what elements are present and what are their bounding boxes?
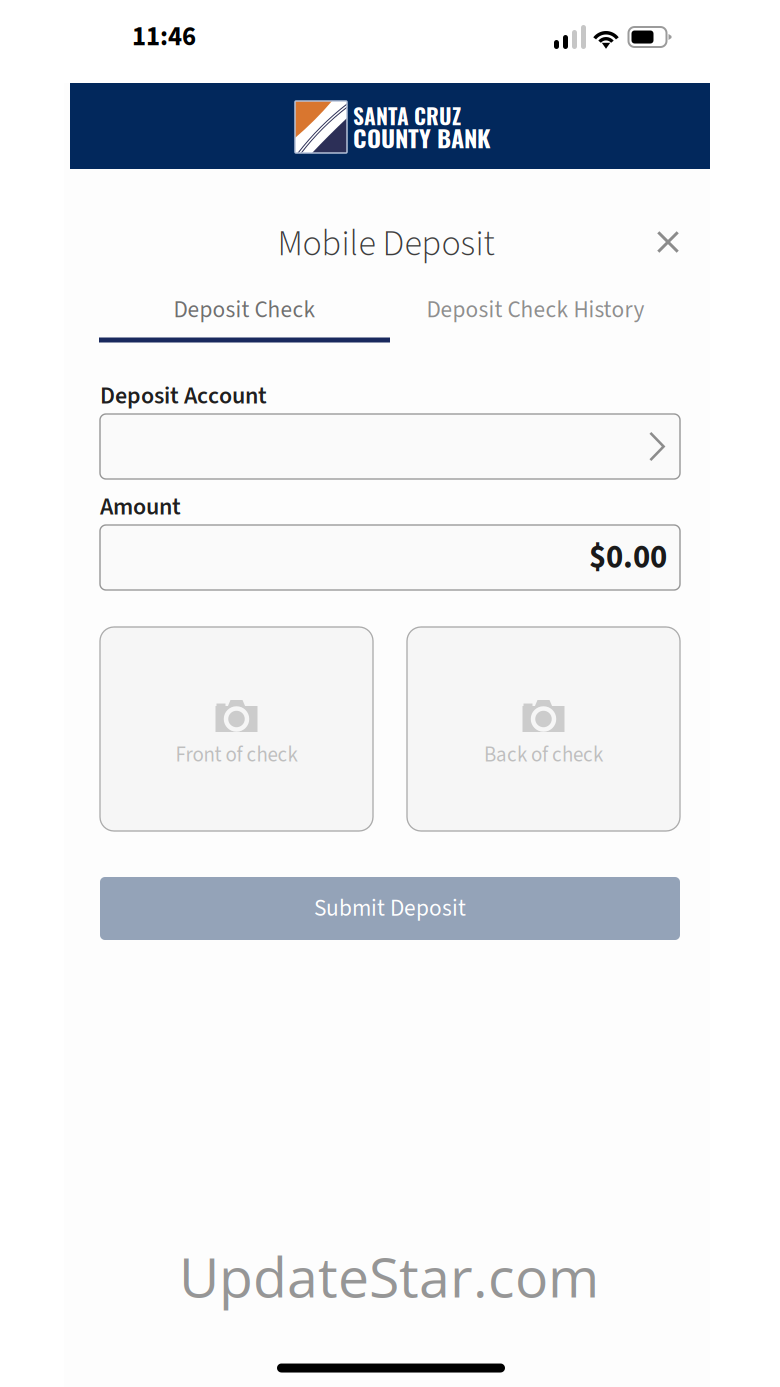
staticText: Amount xyxy=(100,490,181,524)
button[interactable]: $0.00 xyxy=(100,525,680,590)
staticText: 11:46 xyxy=(132,18,196,56)
staticText: Deposit Check xyxy=(173,293,315,327)
button[interactable]: Deposit Check History xyxy=(390,282,681,337)
staticText: Deposit Check History xyxy=(426,293,644,327)
button[interactable]: Front of check xyxy=(100,627,373,831)
staticText: COUNTY BANK xyxy=(353,120,491,155)
staticText: Submit Deposit xyxy=(314,892,466,925)
button[interactable]: Back of check xyxy=(407,627,680,831)
staticText: UpdateStar.com xyxy=(179,1238,599,1314)
button[interactable] xyxy=(100,414,680,479)
button[interactable]: Deposit Check xyxy=(99,282,390,342)
button[interactable]: Close xyxy=(640,214,695,269)
staticText: Mobile Deposit xyxy=(277,218,494,270)
staticText: Back of check xyxy=(484,740,603,770)
staticText: Front of check xyxy=(175,740,297,770)
staticText: SANTA CRUZ xyxy=(353,100,461,131)
button[interactable]: Submit Deposit xyxy=(100,877,680,940)
staticText: $0.00 xyxy=(589,534,667,581)
staticText: Deposit Account xyxy=(100,379,267,413)
